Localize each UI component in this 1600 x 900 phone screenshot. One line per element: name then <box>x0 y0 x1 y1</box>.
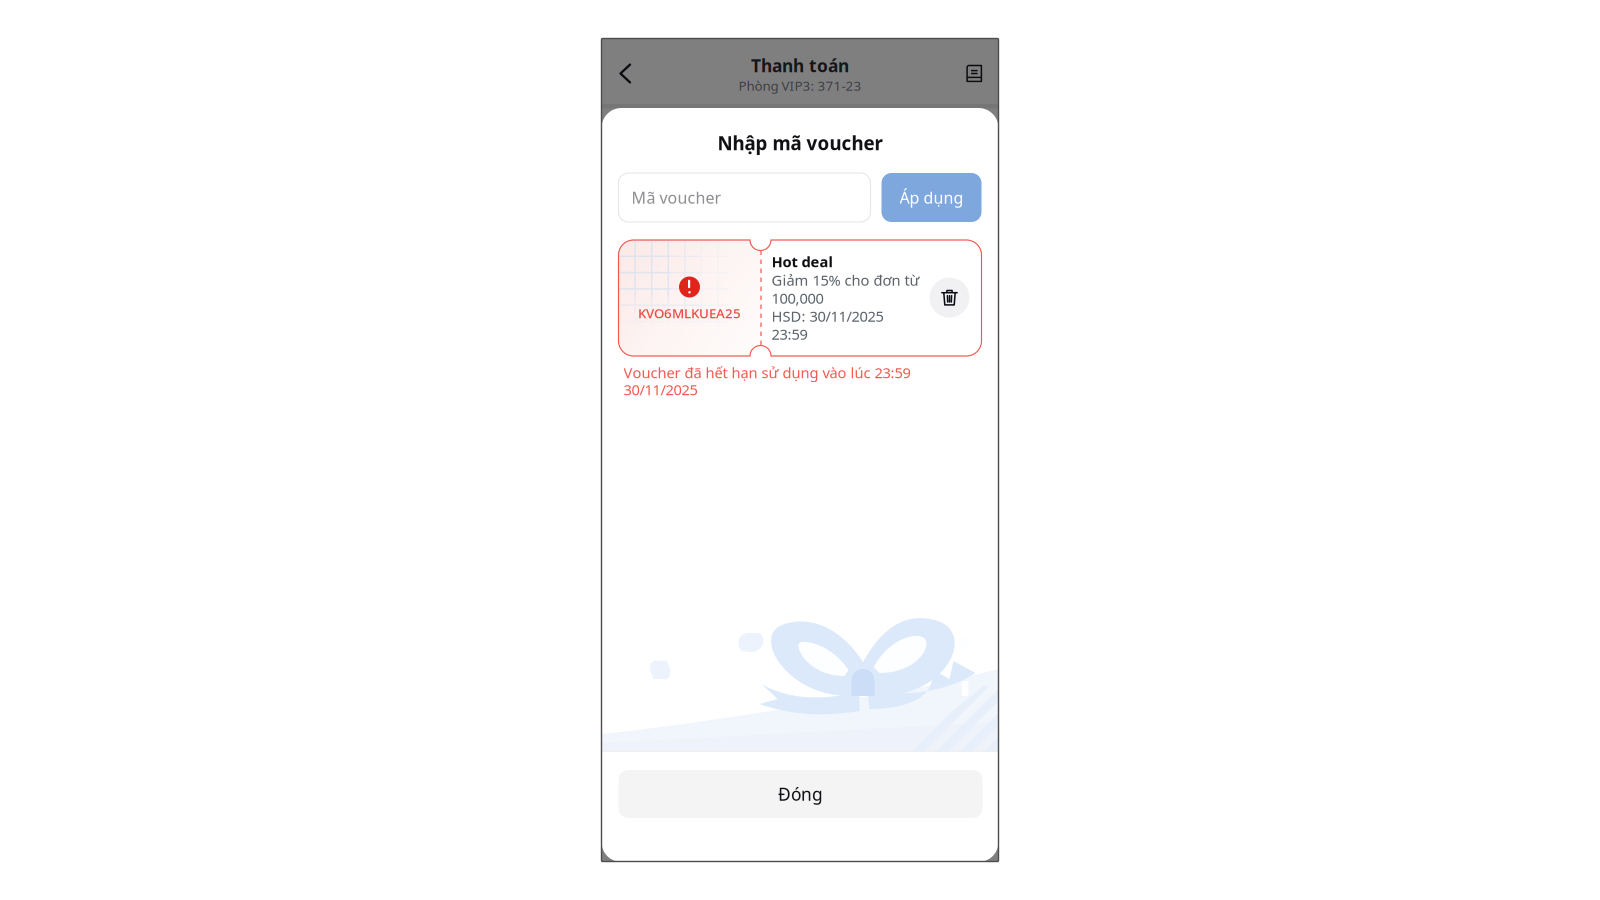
staticText: 100,000 <box>771 288 823 308</box>
button[interactable]: Quay lại <box>604 51 646 95</box>
staticText: KVO6MLKUEA25 <box>638 304 741 322</box>
button[interactable]: Đóng <box>618 770 982 818</box>
staticText: Nhập mã voucher <box>717 131 882 155</box>
staticText: Hot deal <box>771 252 832 271</box>
staticText: Đóng <box>778 782 823 805</box>
staticText: Giảm 15% cho đơn từ <box>771 270 919 290</box>
staticText: HSD: 30/11/2025 <box>771 306 883 326</box>
staticText: Voucher đã hết hạn sử dụng vào lúc 23:59 <box>623 363 910 382</box>
staticText: Mã voucher <box>631 187 721 208</box>
staticText: 30/11/2025 <box>623 380 697 399</box>
button[interactable]: Xoá voucher <box>929 278 969 318</box>
staticText: Áp dụng <box>899 187 963 208</box>
staticText: 23:59 <box>771 324 807 344</box>
staticText: Phòng VIP3: 371-23 <box>738 77 861 94</box>
staticText: Thanh toán <box>751 54 849 77</box>
button[interactable]: Áp dụng <box>881 173 981 222</box>
button[interactable]: Ghi chú <box>953 51 995 95</box>
